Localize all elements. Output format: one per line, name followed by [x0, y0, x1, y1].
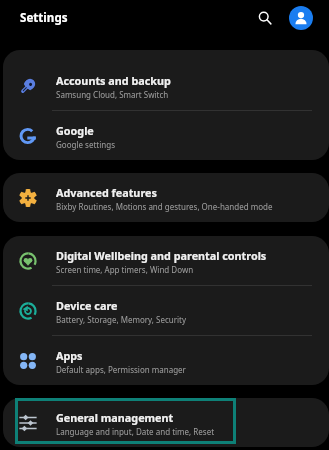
staticText: Device care — [56, 298, 118, 313]
button[interactable]: Account — [289, 6, 313, 30]
button[interactable]: Google — [3, 111, 329, 160]
button[interactable]: Digital Wellbeing and parental controls — [3, 236, 329, 285]
staticText: Bixby Routines, Motions and gestures, On… — [56, 201, 273, 212]
button[interactable]: Advanced features — [3, 173, 329, 222]
staticText: General management — [56, 410, 174, 425]
staticText: Apps — [56, 348, 83, 363]
staticText: Default apps, Permission manager — [56, 364, 186, 375]
staticText: Samsung Cloud, Smart Switch — [56, 89, 169, 100]
button[interactable]: Search — [252, 5, 277, 30]
staticText: Google settings — [56, 139, 115, 150]
button[interactable]: General management — [3, 398, 329, 447]
staticText: Digital Wellbeing and parental controls — [56, 248, 267, 263]
button[interactable]: Device care — [3, 286, 329, 335]
staticText: Screen time, App timers, Wind Down — [56, 264, 194, 275]
staticText: Accounts and backup — [56, 73, 171, 88]
button[interactable]: Accounts and backup — [3, 61, 329, 110]
button[interactable]: Apps — [3, 336, 329, 385]
staticText: Settings — [20, 10, 68, 26]
staticText: Battery, Storage, Memory, Security — [56, 314, 187, 325]
staticText: Advanced features — [56, 185, 157, 200]
staticText: Google — [56, 123, 94, 138]
staticText: Language and input, Date and time, Reset — [56, 426, 215, 437]
